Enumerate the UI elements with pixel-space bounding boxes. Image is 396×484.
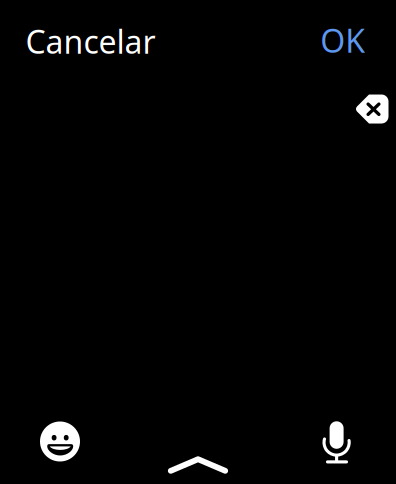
button[interactable]: Cancelar <box>25 20 155 63</box>
staticText: OK <box>320 19 365 62</box>
staticText: Cancelar <box>25 20 155 63</box>
button[interactable]: Show keyboard <box>168 456 228 474</box>
button[interactable]: Dictation <box>322 421 351 463</box>
button[interactable]: Delete <box>354 94 388 123</box>
button[interactable]: Emoji <box>40 421 80 461</box>
button[interactable]: OK <box>320 19 365 62</box>
